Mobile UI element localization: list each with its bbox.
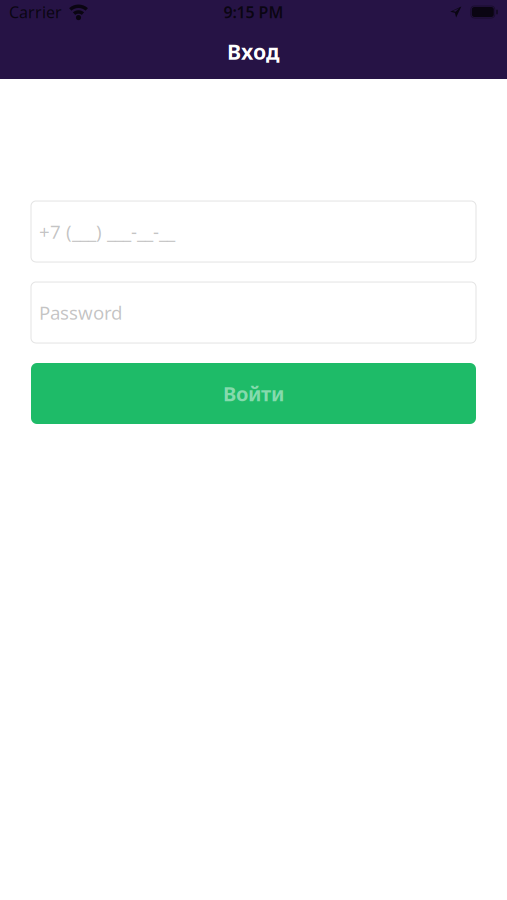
staticText: Вход xyxy=(227,37,280,66)
button[interactable]: Войти xyxy=(31,363,476,424)
staticText: Carrier xyxy=(9,1,62,23)
staticText: Войти xyxy=(223,380,284,407)
staticText: 9:15 PM xyxy=(223,1,283,23)
button[interactable]: Password xyxy=(31,282,476,343)
staticText: Password xyxy=(39,300,122,325)
button[interactable]: +7 (___) ___-__-__ xyxy=(31,201,476,262)
staticText: +7 (___) ___-__-__ xyxy=(39,219,175,244)
